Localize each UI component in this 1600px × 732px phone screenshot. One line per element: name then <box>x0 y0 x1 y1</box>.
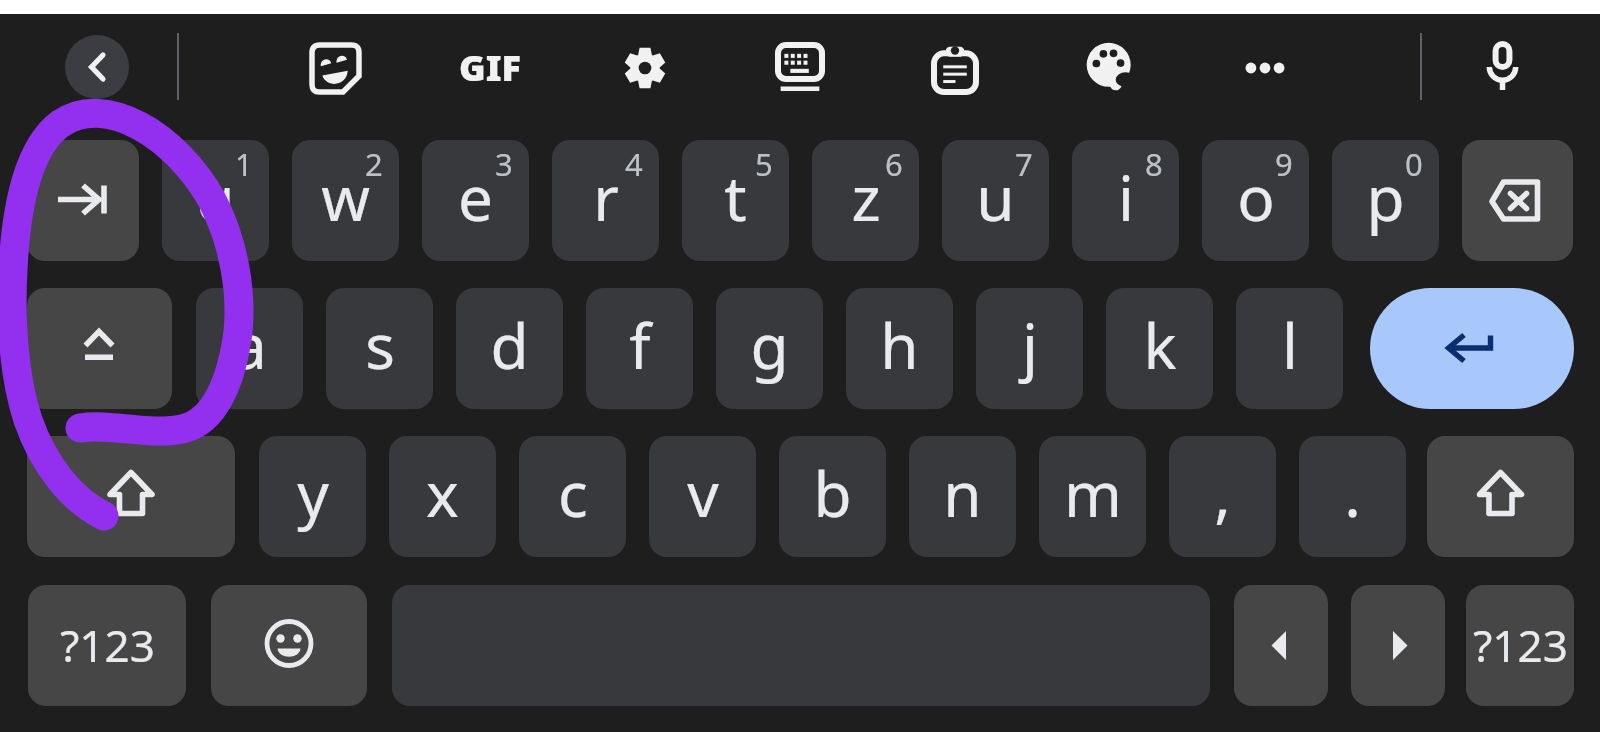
button[interactable]: Caps lock <box>27 288 172 409</box>
staticText: o <box>1237 155 1275 239</box>
button[interactable]: More options <box>1223 40 1307 96</box>
button[interactable]: Settings <box>604 27 686 109</box>
button[interactable]: Clipboard <box>914 26 996 112</box>
button[interactable]: i <box>1072 140 1179 261</box>
button[interactable]: e <box>422 140 529 261</box>
button[interactable]: q <box>162 140 269 261</box>
staticText: h <box>880 303 919 387</box>
staticText: g <box>750 303 789 387</box>
button[interactable]: Shift <box>1427 436 1574 557</box>
button[interactable]: r <box>552 140 659 261</box>
button[interactable]: Voice input <box>1466 24 1539 110</box>
staticText: 1 <box>235 143 253 185</box>
button[interactable]: Tab <box>27 140 139 261</box>
button[interactable]: b <box>779 436 886 557</box>
button[interactable]: Emoji <box>211 585 367 706</box>
button[interactable]: Enter <box>1370 288 1574 409</box>
button[interactable]: Back <box>65 35 129 99</box>
staticText: ?123 <box>60 615 155 675</box>
staticText: e <box>458 155 493 239</box>
staticText: n <box>943 451 982 535</box>
staticText: 9 <box>1275 143 1293 185</box>
staticText: d <box>490 303 529 387</box>
button[interactable]: Move cursor right <box>1351 585 1445 706</box>
staticText: , <box>1214 451 1231 535</box>
staticText: s <box>365 303 395 387</box>
staticText: c <box>558 451 588 535</box>
staticText: 8 <box>1145 143 1163 185</box>
button[interactable]: z <box>812 140 919 261</box>
staticText: ?123 <box>1473 615 1568 675</box>
button[interactable]: . <box>1299 436 1406 557</box>
button[interactable]: t <box>682 140 789 261</box>
staticText: . <box>1344 451 1361 535</box>
button[interactable]: , <box>1169 436 1276 557</box>
button[interactable]: g <box>716 288 823 409</box>
button[interactable]: Stickers <box>292 25 379 112</box>
staticText: b <box>813 451 852 535</box>
button[interactable]: j <box>976 288 1083 409</box>
staticText: z <box>851 155 881 239</box>
button[interactable]: u <box>942 140 1049 261</box>
staticText: 2 <box>365 143 383 185</box>
button[interactable]: y <box>259 436 366 557</box>
button[interactable]: s <box>326 288 433 409</box>
button[interactable]: c <box>519 436 626 557</box>
button[interactable]: Themes <box>1068 25 1152 109</box>
staticText: 7 <box>1015 143 1033 185</box>
staticText: k <box>1143 303 1177 387</box>
button[interactable]: Keyboard mode <box>758 25 842 111</box>
button[interactable]: v <box>649 436 756 557</box>
button[interactable]: a <box>196 288 303 409</box>
button[interactable]: Shift <box>27 436 235 557</box>
staticText: w <box>321 155 370 239</box>
staticText: f <box>629 303 651 387</box>
staticText: 4 <box>625 143 643 185</box>
button[interactable]: m <box>1039 436 1146 557</box>
staticText: u <box>976 155 1015 239</box>
button[interactable]: o <box>1202 140 1309 261</box>
button[interactable]: w <box>292 140 399 261</box>
staticText: r <box>593 155 619 239</box>
button[interactable]: Backspace <box>1462 140 1573 261</box>
staticText: GIF <box>459 43 521 92</box>
button[interactable]: GIF <box>450 38 530 98</box>
staticText: a <box>232 303 267 387</box>
staticText: l <box>1282 303 1298 387</box>
staticText: m <box>1064 451 1122 535</box>
button[interactable]: l <box>1236 288 1343 409</box>
button[interactable]: ?123 <box>28 585 186 706</box>
staticText: 6 <box>885 143 903 185</box>
button[interactable]: k <box>1106 288 1213 409</box>
staticText: i <box>1118 155 1134 239</box>
staticText: 3 <box>495 143 513 185</box>
button[interactable]: f <box>586 288 693 409</box>
staticText: p <box>1366 155 1405 239</box>
button[interactable]: n <box>909 436 1016 557</box>
staticText: t <box>724 155 747 239</box>
staticText: j <box>1022 303 1038 387</box>
staticText: q <box>196 155 235 239</box>
staticText: v <box>687 451 719 535</box>
button[interactable]: d <box>456 288 563 409</box>
button[interactable]: p <box>1332 140 1439 261</box>
button[interactable]: h <box>846 288 953 409</box>
staticText: y <box>297 451 329 535</box>
button[interactable]: ?123 <box>1466 585 1574 706</box>
button[interactable]: x <box>389 436 496 557</box>
staticText: 5 <box>755 143 773 185</box>
button[interactable]: Move cursor left <box>1234 585 1328 706</box>
staticText: x <box>426 451 459 535</box>
staticText: 0 <box>1405 143 1423 185</box>
